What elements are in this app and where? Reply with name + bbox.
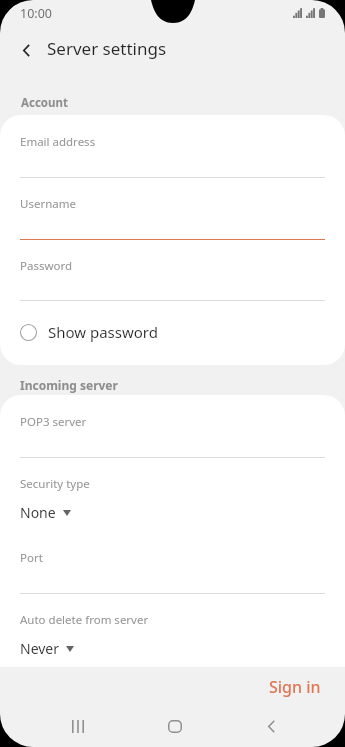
button[interactable]: Port: [0, 531, 345, 593]
staticText: Auto delete from server: [20, 612, 149, 628]
button[interactable]: Security type: [0, 457, 345, 531]
staticText: 10:00: [20, 5, 52, 22]
staticText: Never: [20, 639, 60, 658]
button[interactable]: Sign in: [252, 663, 336, 711]
button[interactable]: Username: [0, 177, 345, 239]
button[interactable]: Back: [247, 705, 295, 747]
button[interactable]: Password: [0, 239, 345, 301]
staticText: Server settings: [47, 37, 167, 60]
button[interactable]: Home: [151, 705, 199, 747]
button[interactable]: Recents: [54, 705, 102, 747]
button[interactable]: Auto delete from server: [0, 593, 345, 667]
staticText: Show password: [48, 322, 158, 342]
button[interactable]: Show password: [0, 300, 345, 364]
button[interactable]: Email address: [0, 115, 345, 177]
staticText: POP3 server: [20, 414, 87, 430]
button[interactable]: POP3 server: [0, 395, 345, 457]
staticText: None: [20, 503, 56, 522]
staticText: Security type: [20, 476, 90, 492]
staticText: Port: [20, 550, 43, 566]
staticText: Email address: [20, 134, 96, 150]
staticText: Account: [21, 95, 68, 111]
button[interactable]: Navigate up: [6, 30, 46, 70]
staticText: Sign in: [269, 676, 321, 698]
staticText: Password: [20, 258, 73, 274]
staticText: Incoming server: [20, 377, 118, 393]
staticText: Username: [20, 196, 76, 212]
